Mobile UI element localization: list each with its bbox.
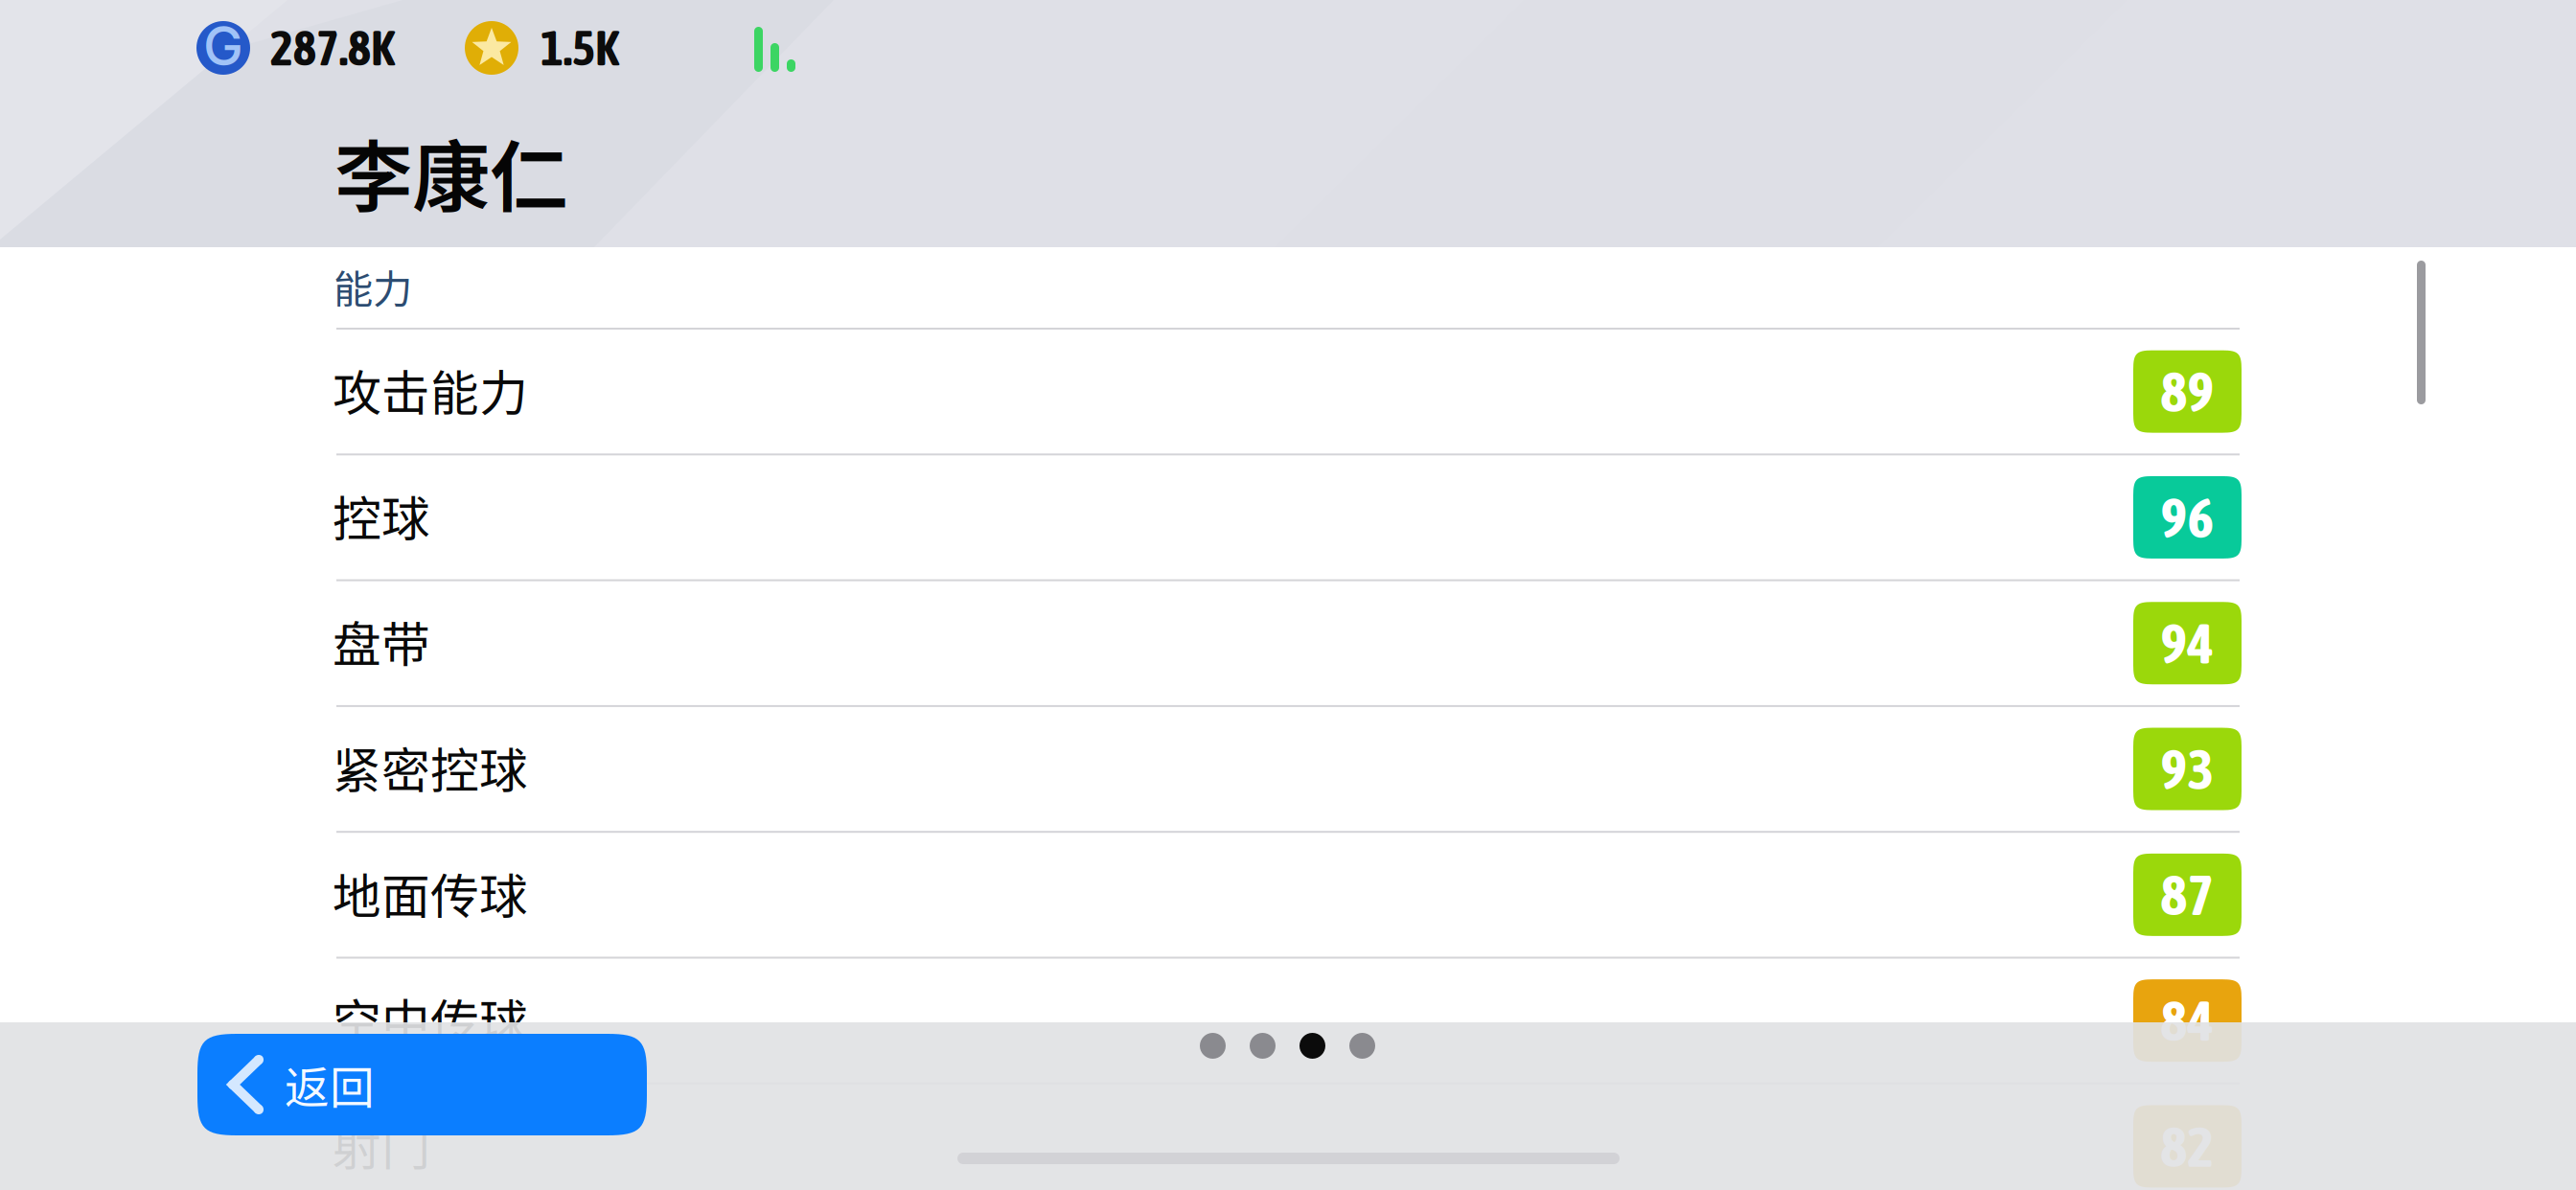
staticText: 94 [2161, 611, 2214, 675]
staticText: 攻击能力 [333, 355, 528, 425]
staticText: 1.5K [540, 20, 619, 76]
button[interactable]: 控球 [0, 453, 2576, 579]
button[interactable]: Page 2 of 4 [1250, 1033, 1276, 1059]
staticText: 能力 [333, 258, 412, 315]
staticText: 93 [2161, 737, 2214, 801]
staticText: G [203, 14, 243, 78]
staticText: 96 [2161, 485, 2214, 549]
button[interactable]: 紧密控球 [0, 705, 2576, 831]
staticText: 地面传球 [333, 858, 528, 928]
button[interactable]: 空中传球 [0, 957, 2576, 1082]
button[interactable]: Page 3 of 4, current [1299, 1033, 1325, 1059]
button[interactable]: Page 4 of 4 [1349, 1033, 1375, 1059]
staticText: 紧密控球 [333, 732, 528, 802]
button[interactable]: Statistics [754, 26, 808, 72]
staticText: 空中传球 [333, 984, 528, 1054]
staticText: 返回 [285, 1052, 375, 1117]
staticText: 87 [2161, 863, 2214, 927]
button[interactable]: 攻击能力 [0, 328, 2576, 453]
staticText: 盘带 [333, 606, 430, 676]
button[interactable]: 地面传球 [0, 831, 2576, 957]
button[interactable]: 盘带 [0, 579, 2576, 705]
staticText: 82 [2161, 1114, 2214, 1179]
staticText: 控球 [333, 480, 430, 551]
staticText: 李康仁 [334, 115, 567, 228]
staticText: 射门 [333, 1109, 430, 1180]
button[interactable]: 射门 [0, 1082, 2576, 1190]
button[interactable]: 返回 [197, 1034, 647, 1135]
button[interactable]: Page 1 of 4 [1200, 1033, 1226, 1059]
staticText: 89 [2161, 359, 2214, 424]
button[interactable]: Rating 1.5K [465, 21, 627, 75]
staticText: 287.8K [270, 20, 395, 76]
button[interactable]: Downloads 287.8K [196, 21, 401, 75]
staticText: 84 [2161, 988, 2214, 1053]
